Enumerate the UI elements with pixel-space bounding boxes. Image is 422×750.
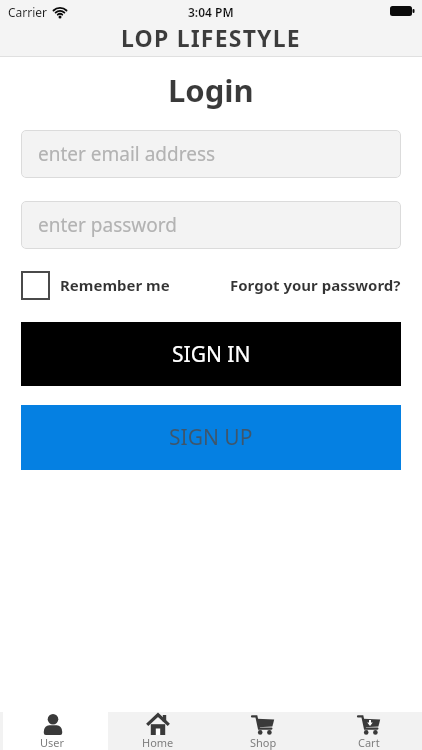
staticText: SIGN IN [172, 340, 251, 369]
button[interactable]: Cart [316, 712, 422, 750]
button[interactable]: enter password [21, 201, 401, 249]
button[interactable]: SIGN IN [21, 322, 401, 386]
staticText: Remember me [60, 275, 170, 295]
button[interactable]: Home [105, 712, 210, 750]
button[interactable]: Forgot your password? [230, 275, 401, 295]
staticText: Shop [250, 735, 277, 750]
staticText: LOP LIFESTYLE [121, 22, 301, 53]
button[interactable]: enter email address [21, 130, 401, 178]
staticText: Home [142, 735, 174, 750]
button[interactable]: Shop [210, 712, 316, 750]
button[interactable]: SIGN UP [21, 405, 401, 470]
staticText: Cart [358, 735, 380, 750]
button[interactable] [21, 271, 50, 300]
staticText: enter email address [38, 141, 216, 167]
staticText: Login [168, 69, 254, 111]
staticText: Forgot your password? [230, 275, 401, 295]
staticText: SIGN UP [169, 423, 253, 452]
staticText: User [40, 735, 65, 750]
staticText: enter password [38, 212, 177, 238]
staticText: 3:04 PM [188, 4, 234, 20]
staticText: Carrier [8, 4, 48, 20]
button[interactable]: User [0, 712, 105, 750]
